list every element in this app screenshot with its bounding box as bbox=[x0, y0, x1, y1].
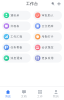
staticText: 云文档库 bbox=[42, 24, 54, 28]
staticText: 考勤打卡 bbox=[42, 35, 54, 38]
button[interactable]: 工作 bbox=[32, 86, 48, 100]
button[interactable]: 消息通知 bbox=[2, 54, 31, 63]
staticText: 日程表 bbox=[10, 24, 19, 28]
button[interactable]: 工作汇报 bbox=[2, 32, 31, 41]
button[interactable]: 消息 bbox=[0, 86, 16, 100]
button[interactable]: 通讯录 bbox=[2, 11, 31, 20]
staticText: 审批助人 bbox=[42, 14, 54, 17]
staticText: 更多应用 bbox=[42, 56, 54, 60]
button[interactable]: 会议预定 bbox=[33, 43, 62, 52]
button[interactable]: Add bbox=[56, 1, 62, 7]
staticText: 消息 bbox=[5, 95, 11, 98]
staticText: 文档 bbox=[21, 95, 27, 98]
staticText: 任务看板 bbox=[10, 46, 22, 49]
button[interactable]: 日程表 bbox=[2, 21, 31, 30]
staticText: 工作汇报 bbox=[10, 35, 22, 38]
button[interactable]: 考勤打卡 bbox=[33, 32, 62, 41]
staticText: 会议预定 bbox=[42, 46, 54, 49]
button[interactable]: 任务看板 bbox=[2, 43, 31, 52]
staticText: 工作台 bbox=[26, 1, 38, 6]
button[interactable]: 文档 bbox=[16, 86, 32, 100]
button[interactable]: 我的 bbox=[48, 86, 64, 100]
staticText: 通讯录 bbox=[10, 14, 19, 17]
staticText: 我的 bbox=[53, 95, 59, 98]
staticText: 消息通知 bbox=[10, 56, 22, 60]
button[interactable]: Search bbox=[50, 1, 56, 7]
staticText: 工作 bbox=[37, 95, 43, 98]
button[interactable]: 云文档库 bbox=[33, 21, 62, 30]
button[interactable]: 审批助人 bbox=[33, 11, 62, 20]
button[interactable]: 更多应用 bbox=[33, 54, 62, 63]
